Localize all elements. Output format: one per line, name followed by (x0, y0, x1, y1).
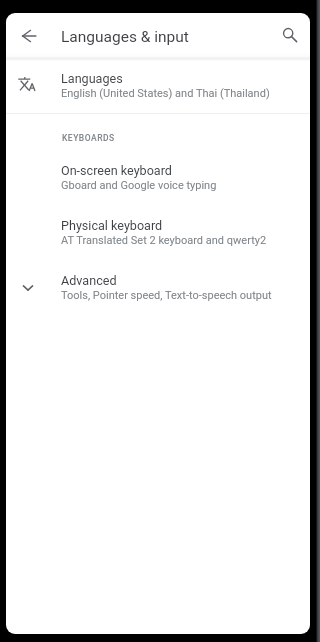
staticText: Languages & input (61, 28, 189, 46)
button[interactable]: Physical keyboard (6, 206, 310, 261)
staticText: Languages (61, 71, 123, 86)
staticText: Gboard and Google voice typing (61, 179, 217, 192)
button[interactable]: Advanced (6, 261, 310, 316)
staticText: AT Translated Set 2 keyboard and qwerty2 (61, 234, 267, 247)
staticText: On-screen keyboard (61, 163, 172, 178)
staticText: KEYBOARDS (62, 133, 115, 143)
button[interactable]: Navigate up (11, 18, 47, 54)
staticText: English (United States) and Thai (Thaila… (61, 87, 270, 100)
staticText: Tools, Pointer speed, Text-to-speech out… (61, 289, 272, 302)
button[interactable]: On-screen keyboard (6, 151, 310, 206)
staticText: Physical keyboard (61, 218, 163, 233)
button[interactable]: Languages (6, 57, 310, 113)
staticText: Advanced (61, 273, 117, 288)
button[interactable]: Search (272, 17, 308, 53)
